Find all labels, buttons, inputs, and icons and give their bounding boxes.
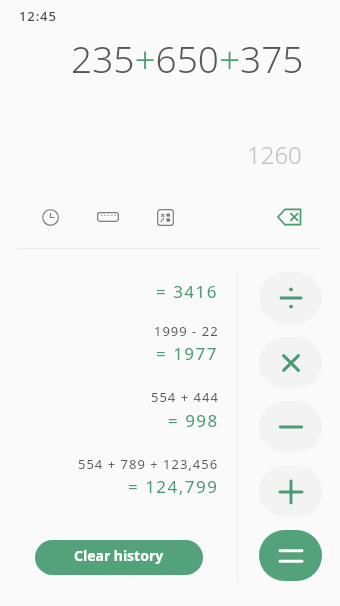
button[interactable]: Keyboard (90, 199, 126, 235)
staticText: = 998 (168, 409, 219, 432)
staticText: = 1977 (156, 342, 219, 365)
staticText: 1260 (247, 138, 302, 171)
button[interactable]: Equals (259, 530, 322, 581)
staticText: 554 + 789 + 123,456 (78, 455, 219, 473)
staticText: = 3416 (156, 280, 219, 303)
staticText: Clear history (74, 546, 164, 565)
staticText: 554 + 444 (151, 388, 219, 406)
staticText: = 124,799 (128, 475, 219, 498)
button[interactable]: History (32, 199, 68, 235)
staticText: 12:45 (19, 7, 57, 25)
button[interactable]: Clear history (35, 540, 203, 575)
button[interactable]: Scientific mode (147, 199, 183, 235)
button[interactable]: Backspace (271, 199, 307, 235)
button[interactable]: Subtract (259, 401, 322, 452)
staticText: 1999 - 22 (154, 322, 219, 340)
button[interactable]: Add (259, 466, 322, 517)
staticText: 235+650+375 (71, 33, 304, 83)
button[interactable]: Divide (259, 272, 322, 323)
button[interactable]: Multiply (259, 337, 322, 388)
